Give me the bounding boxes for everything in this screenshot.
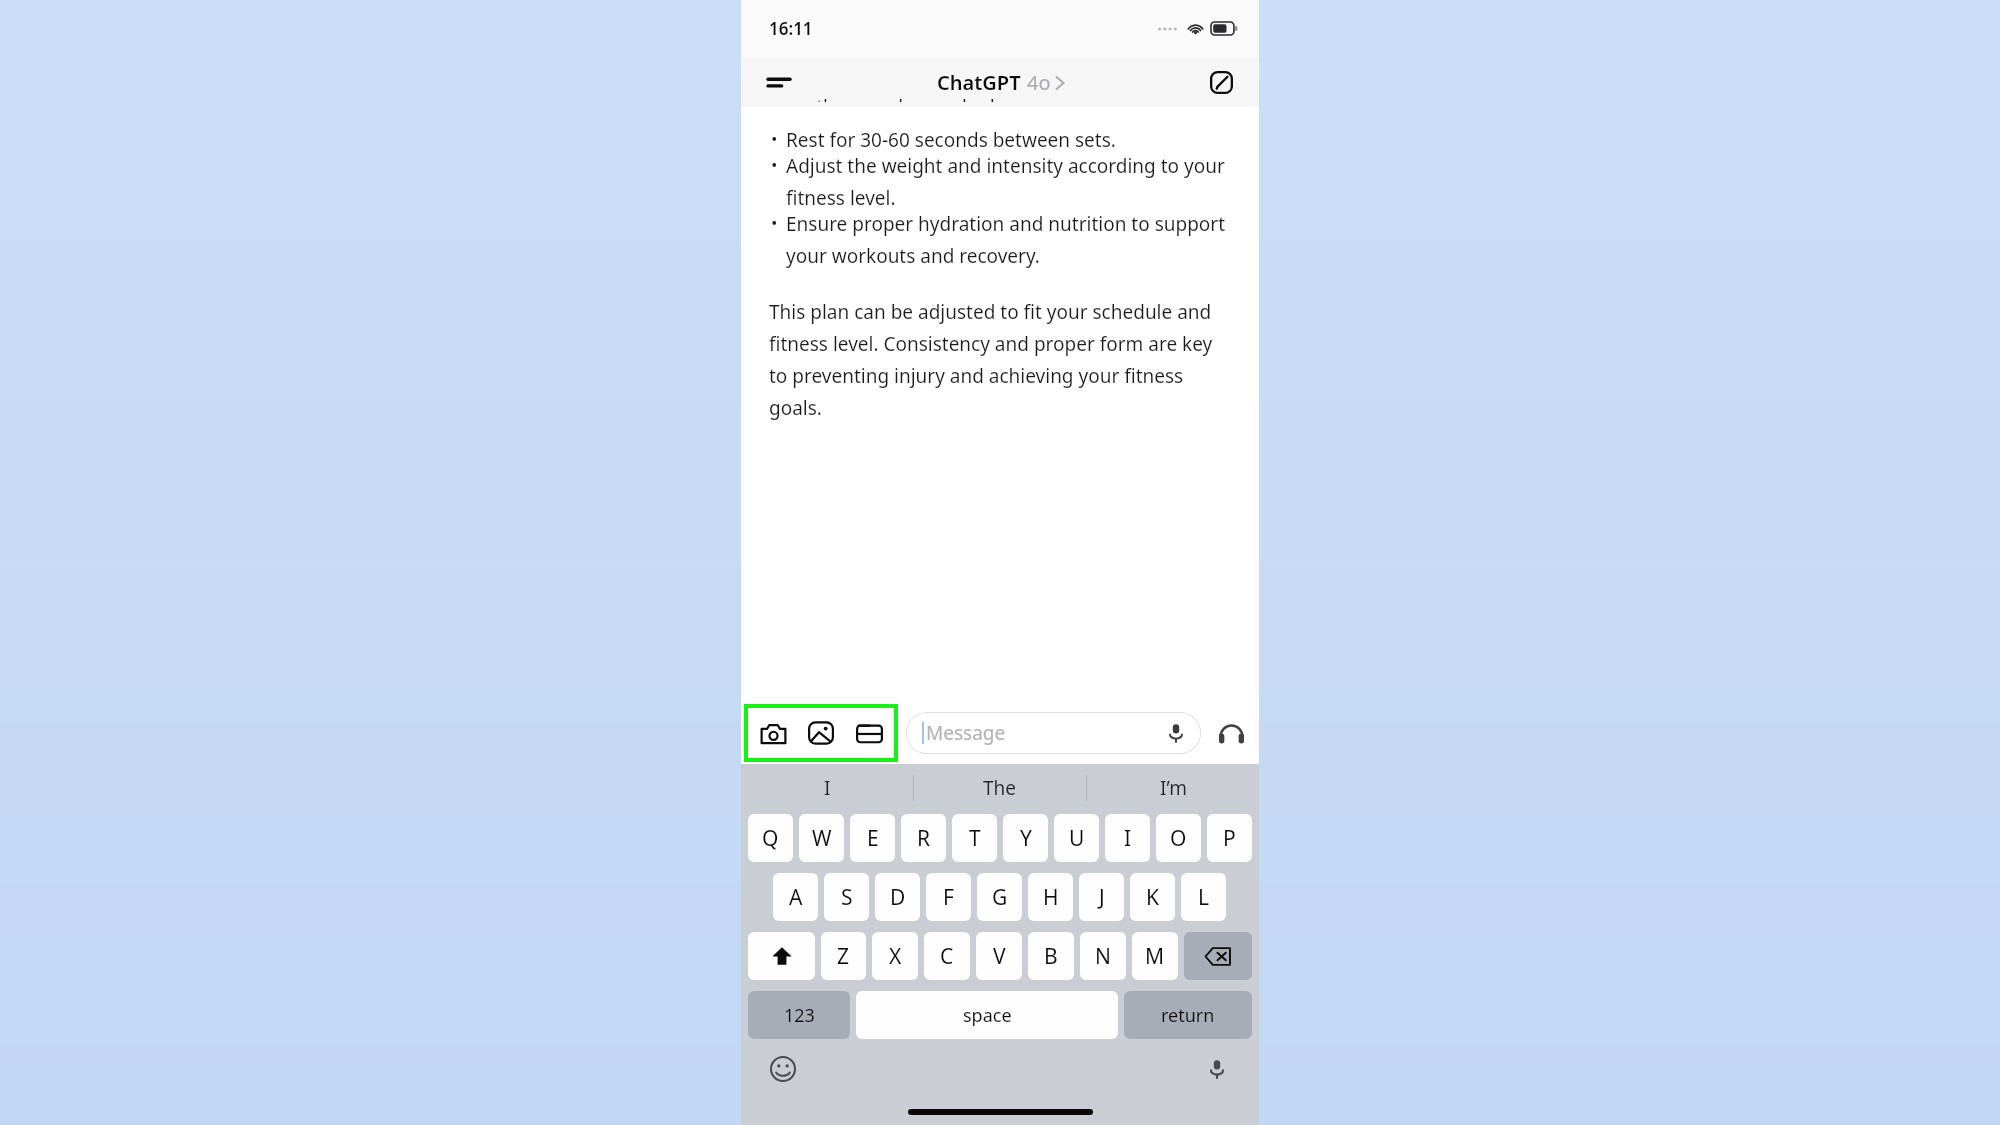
button[interactable]: Menu <box>759 62 799 102</box>
button[interactable]: R <box>901 814 946 862</box>
button[interactable]: Emoji <box>763 1049 803 1089</box>
staticText: space <box>963 1003 1012 1028</box>
staticText: V <box>993 942 1006 971</box>
staticText: O <box>1170 824 1187 853</box>
button[interactable]: L <box>1181 873 1226 921</box>
button[interactable]: K <box>1130 873 1175 921</box>
staticText: Ensure proper hydration and nutrition to… <box>786 211 1231 269</box>
button[interactable]: I’m <box>1087 764 1259 812</box>
button[interactable]: Z <box>821 932 866 980</box>
button[interactable]: F <box>926 873 971 921</box>
staticText: B <box>1044 942 1058 971</box>
button[interactable]: Y <box>1003 814 1048 862</box>
button[interactable]: C <box>924 932 970 980</box>
staticText: F <box>943 883 954 912</box>
button[interactable]: E <box>850 814 895 862</box>
button[interactable]: P <box>1207 814 1252 862</box>
staticText: Adjust the weight and intensity accordin… <box>786 153 1231 211</box>
staticText: E <box>867 824 879 853</box>
staticText: A <box>789 883 803 912</box>
button[interactable]: I <box>741 764 913 812</box>
staticText: 123 <box>784 1003 815 1028</box>
staticText: ChatGPT <box>937 69 1021 96</box>
button[interactable]: B <box>1028 932 1074 980</box>
button[interactable]: M <box>1132 932 1178 980</box>
staticText: The <box>983 775 1017 801</box>
staticText: Rest for 30-60 seconds between sets. <box>786 127 1116 153</box>
button[interactable]: The <box>914 764 1086 812</box>
staticText: X <box>889 942 902 971</box>
staticText: • <box>771 127 778 150</box>
button[interactable]: N <box>1080 932 1126 980</box>
staticText: H <box>1043 883 1059 912</box>
staticText: W <box>812 824 832 853</box>
staticText: R <box>917 824 931 853</box>
button[interactable]: Photo library <box>802 714 840 752</box>
staticText: L <box>1198 883 1210 912</box>
button[interactable]: Q <box>748 814 793 862</box>
staticText: Message <box>926 720 1006 746</box>
button[interactable]: T <box>952 814 997 862</box>
button[interactable]: S <box>824 873 869 921</box>
staticText: M <box>1145 942 1165 971</box>
staticText: D <box>890 883 906 912</box>
staticText: I <box>1124 824 1132 853</box>
staticText: This plan can be adjusted to fit your sc… <box>769 299 1231 421</box>
button[interactable]: Take photo <box>754 714 792 752</box>
staticText: U <box>1069 824 1085 853</box>
button[interactable]: H <box>1028 873 1073 921</box>
staticText: C <box>940 942 954 971</box>
button[interactable]: return <box>1124 991 1252 1039</box>
button[interactable]: G <box>977 873 1022 921</box>
button[interactable]: Message <box>906 712 1201 754</box>
button[interactable]: 123 <box>748 991 850 1039</box>
staticText: • <box>771 153 778 176</box>
staticText: I’m <box>1160 775 1187 801</box>
button[interactable]: New chat <box>1201 62 1241 102</box>
button[interactable]: V <box>976 932 1022 980</box>
staticText: on the muscles worked. <box>788 94 1000 102</box>
staticText: N <box>1095 942 1111 971</box>
button[interactable]: space <box>856 991 1118 1039</box>
staticText: Z <box>837 942 850 971</box>
button[interactable]: Dictate <box>1163 720 1189 746</box>
button[interactable]: O <box>1156 814 1201 862</box>
button[interactable]: X <box>872 932 918 980</box>
staticText: Y <box>1020 824 1032 853</box>
staticText: T <box>969 824 981 853</box>
staticText: I <box>824 775 831 801</box>
button[interactable]: D <box>875 873 920 921</box>
button[interactable]: U <box>1054 814 1099 862</box>
staticText: Q <box>762 824 779 853</box>
staticText: J <box>1099 883 1105 912</box>
staticText: P <box>1223 824 1236 853</box>
staticText: return <box>1161 1003 1215 1028</box>
button[interactable]: W <box>799 814 844 862</box>
button[interactable]: Attach file <box>850 714 888 752</box>
button[interactable]: I <box>1105 814 1150 862</box>
staticText: S <box>841 883 853 912</box>
button[interactable]: ChatGPT <box>931 67 1070 98</box>
staticText: • <box>771 211 778 234</box>
button[interactable]: A <box>773 873 818 921</box>
staticText: 16:11 <box>769 17 813 40</box>
button[interactable]: Shift <box>748 932 815 980</box>
button[interactable]: Dictation <box>1197 1049 1237 1089</box>
staticText: K <box>1146 883 1159 912</box>
staticText: G <box>992 883 1008 912</box>
button[interactable]: Backspace <box>1184 932 1252 980</box>
button[interactable]: Voice mode <box>1211 713 1251 753</box>
staticText: 4o <box>1027 69 1051 96</box>
button[interactable]: J <box>1079 873 1124 921</box>
